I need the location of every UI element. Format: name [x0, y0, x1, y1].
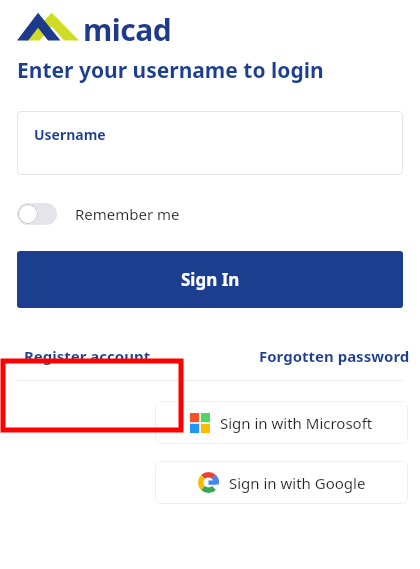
staticText: Enter your username to login: [17, 56, 324, 85]
staticText: Register account: [24, 346, 151, 366]
staticText: Sign in with Google: [229, 473, 366, 493]
button[interactable]: Register account: [0, 332, 151, 380]
button[interactable]: Username: [17, 111, 403, 175]
staticText: micad: [83, 9, 172, 43]
button[interactable]: Sign In: [17, 251, 403, 308]
button[interactable]: Remember me: [17, 203, 180, 225]
button[interactable]: Sign in with Microsoft: [155, 401, 408, 444]
button[interactable]: Forgotten password: [259, 332, 420, 380]
staticText: Username: [34, 125, 106, 144]
staticText: Sign In: [181, 268, 240, 291]
staticText: Forgotten password: [259, 346, 410, 366]
staticText: Sign in with Microsoft: [220, 413, 373, 433]
button[interactable]: Sign in with Google: [155, 461, 408, 504]
staticText: Remember me: [75, 204, 180, 224]
